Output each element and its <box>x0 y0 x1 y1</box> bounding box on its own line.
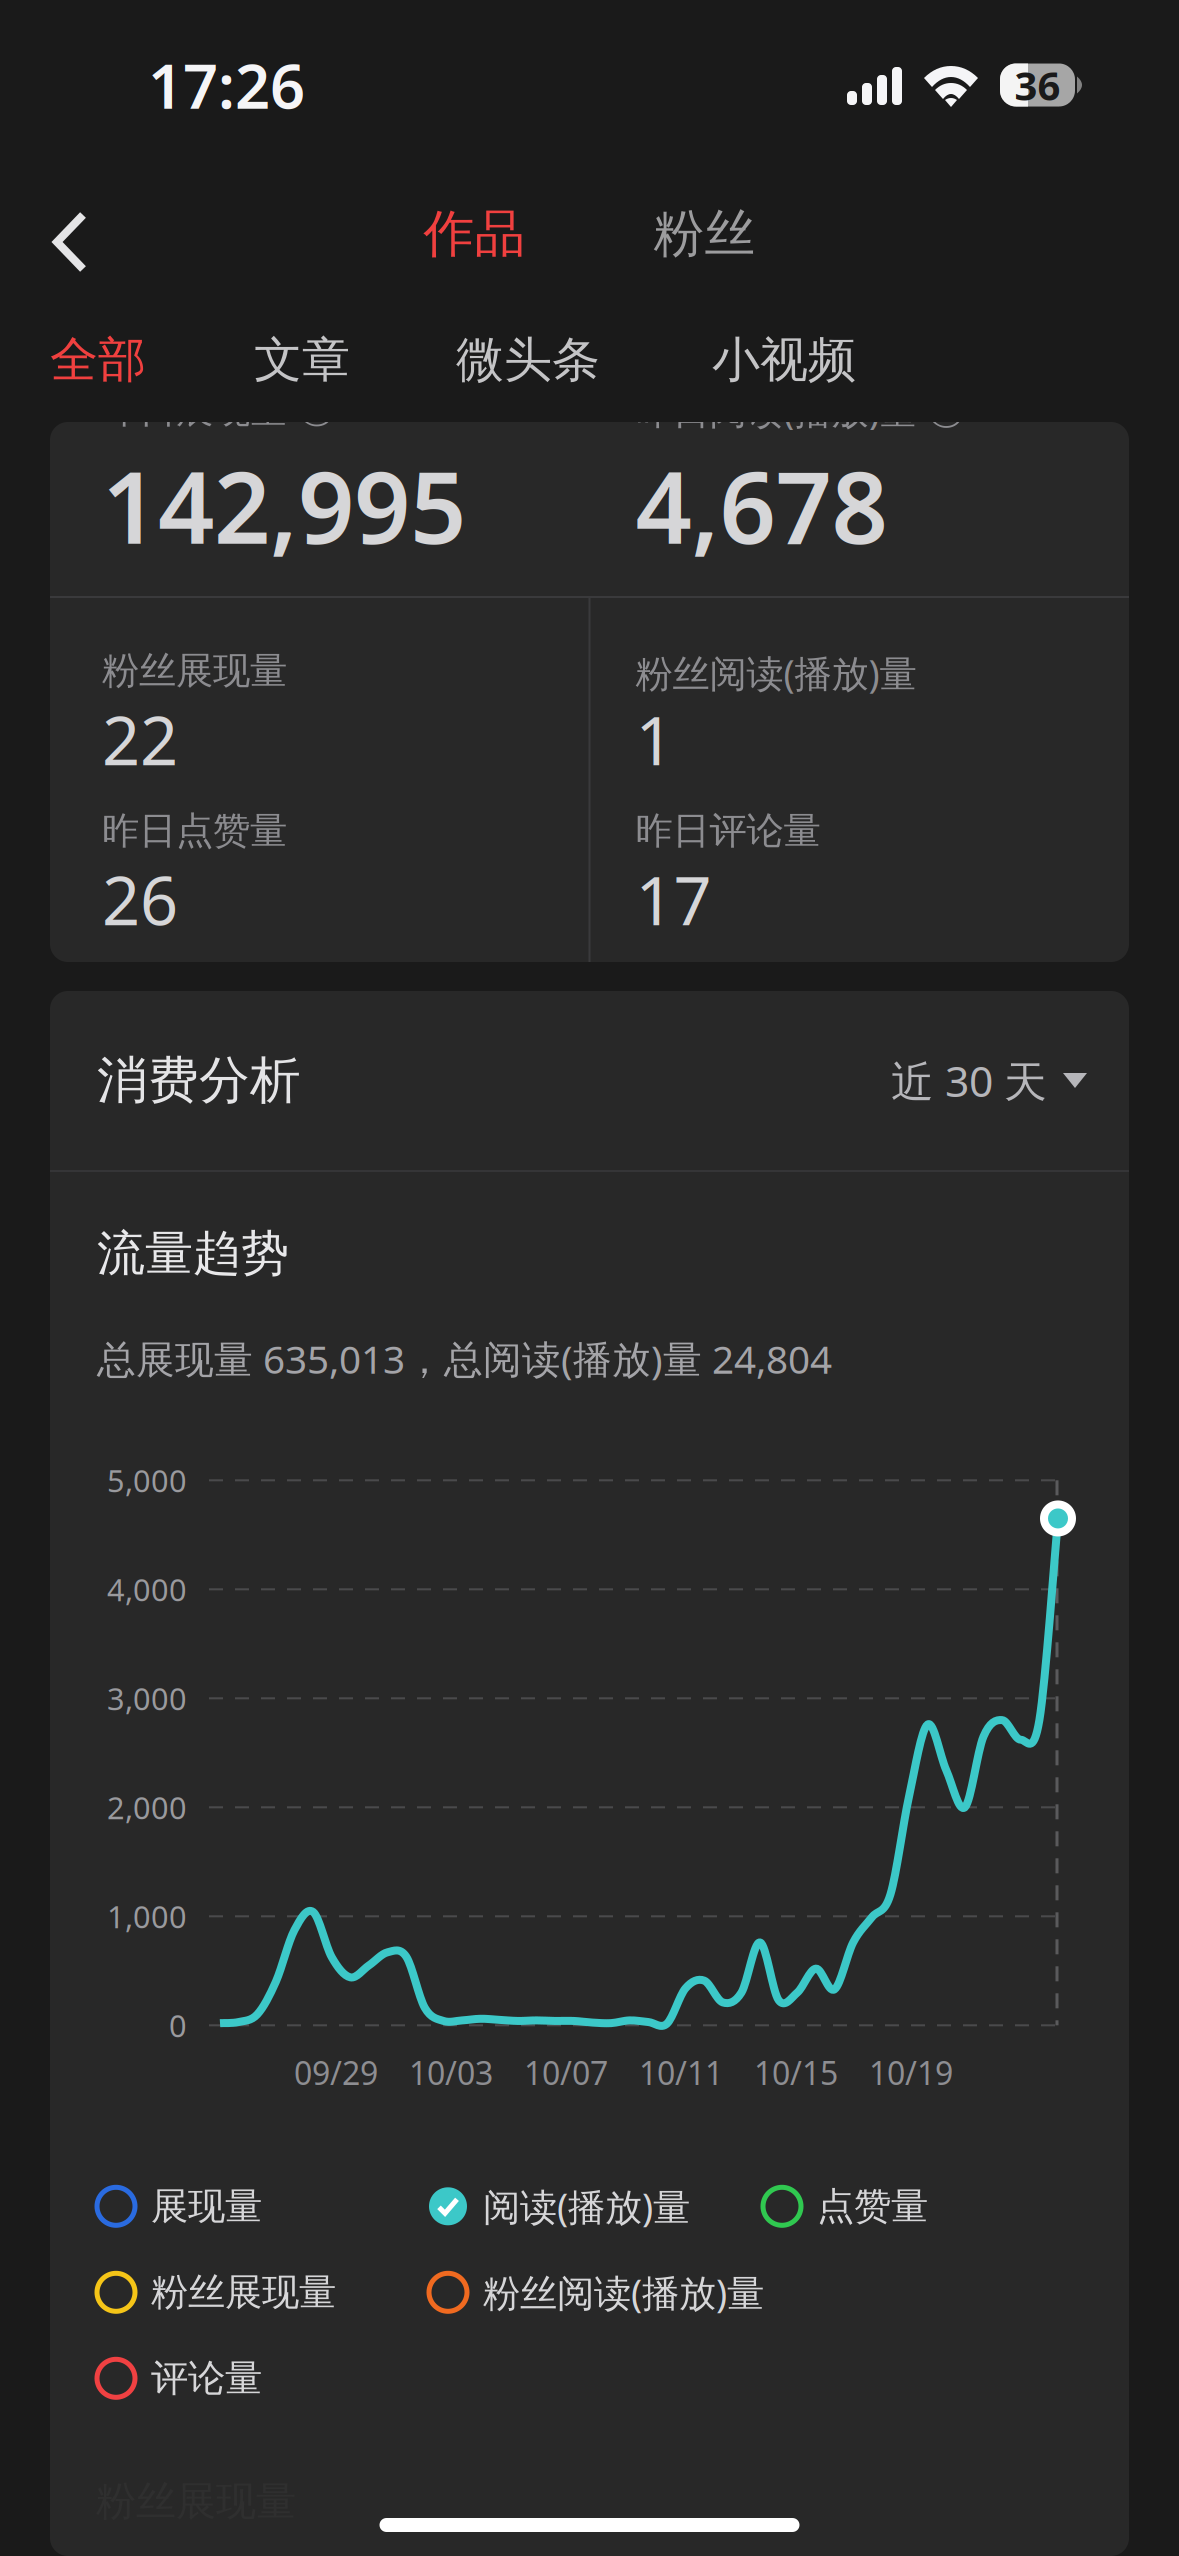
staticText: 1 <box>635 695 673 783</box>
button[interactable]: 展现量 <box>97 2179 262 2233</box>
staticText: 粉丝阅读(播放)量 <box>635 648 916 698</box>
staticText: 昨日阅读(播放)量 ⓘ <box>635 385 964 435</box>
staticText: 消费分析 <box>97 1049 301 1112</box>
staticText: 4,678 <box>635 440 887 571</box>
button[interactable]: 微头条 <box>456 301 600 419</box>
staticText: 昨日评论量 <box>635 808 820 854</box>
button[interactable]: 小视频 <box>712 301 856 419</box>
staticText: 1,000 <box>107 1896 187 1937</box>
staticText: 流量趋势 <box>97 1224 289 1283</box>
staticText: 总展现量 635,013，总阅读(播放)量 24,804 <box>97 1333 832 1384</box>
staticText: 小视频 <box>712 330 856 389</box>
staticText: 10/03 <box>409 2051 493 2094</box>
button[interactable]: 文章 <box>254 301 350 419</box>
staticText: 10/07 <box>524 2051 608 2094</box>
staticText: 昨日展现量 ⓘ <box>102 387 335 433</box>
button[interactable]: 作品 <box>407 184 541 284</box>
staticText: 粉丝阅读(播放)量 <box>483 2267 764 2317</box>
staticText: 点赞量 <box>817 2183 928 2229</box>
staticText: 昨日点赞量 <box>102 808 287 854</box>
staticText: 142,995 <box>102 440 466 571</box>
staticText: 粉丝展现量 <box>151 2269 336 2315</box>
staticText: 17 <box>635 855 711 943</box>
staticText: 阅读(播放)量 <box>483 2181 690 2231</box>
staticText: 22 <box>102 695 178 783</box>
staticText: 36 <box>1014 58 1060 111</box>
staticText: 5,000 <box>107 1460 187 1501</box>
staticText: 作品 <box>423 203 525 265</box>
staticText: 0 <box>169 2005 187 2046</box>
button[interactable]: 返回 <box>0 175 132 293</box>
staticText: 展现量 <box>151 2183 262 2229</box>
staticText: 10/19 <box>869 2051 953 2094</box>
staticText: 近 30 天 <box>891 1052 1047 1109</box>
staticText: 26 <box>102 855 178 943</box>
button[interactable]: 评论量 <box>97 2351 262 2405</box>
button[interactable]: 阅读(播放)量 <box>429 2179 690 2233</box>
button[interactable]: 粉丝 <box>637 184 771 284</box>
button[interactable]: 粉丝阅读(播放)量 <box>429 2265 764 2319</box>
staticText: 文章 <box>254 330 350 389</box>
staticText: 评论量 <box>151 2355 262 2401</box>
staticText: 粉丝展现量 <box>102 648 287 694</box>
staticText: 10/11 <box>639 2051 723 2094</box>
button[interactable]: 点赞量 <box>763 2179 928 2233</box>
staticText: 09/29 <box>294 2051 378 2094</box>
button[interactable]: 近 30 天 <box>891 1052 1087 1109</box>
staticText: 3,000 <box>107 1678 187 1719</box>
button[interactable]: 全部 <box>50 301 146 419</box>
staticText: 粉丝 <box>653 203 755 265</box>
staticText: 17:26 <box>148 44 305 126</box>
staticText: 10/15 <box>754 2051 838 2094</box>
staticText: 全部 <box>50 330 146 389</box>
staticText: 微头条 <box>456 330 600 389</box>
staticText: 4,000 <box>107 1569 187 1610</box>
button[interactable]: 粉丝展现量 <box>97 2265 336 2319</box>
staticText: 2,000 <box>107 1787 187 1828</box>
